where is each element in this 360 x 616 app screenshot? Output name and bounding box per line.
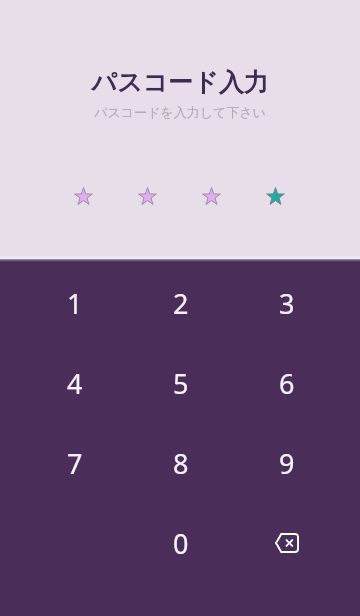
button[interactable]: Backspace [234, 503, 340, 583]
staticText: 4 [67, 365, 83, 402]
button[interactable]: 9 [234, 423, 340, 503]
staticText: 3 [279, 285, 295, 322]
button[interactable]: 1 [21, 263, 128, 343]
button[interactable]: 0 [128, 503, 234, 583]
staticText: 8 [173, 445, 189, 482]
staticText: 1 [67, 285, 83, 322]
button[interactable]: 3 [234, 263, 340, 343]
staticText: 5 [173, 365, 189, 402]
staticText: 0 [173, 525, 189, 562]
staticText: 7 [67, 445, 83, 482]
button[interactable]: 7 [21, 423, 128, 503]
button[interactable]: 5 [128, 343, 234, 423]
staticText: 9 [279, 445, 295, 482]
staticText: 6 [279, 365, 295, 402]
staticText: パスコード入力 [91, 67, 269, 98]
staticText: パスコードを入力して下さい [94, 104, 266, 120]
button[interactable]: 6 [234, 343, 340, 423]
staticText: 2 [173, 285, 189, 322]
button[interactable]: 2 [128, 263, 234, 343]
button[interactable]: 4 [21, 343, 128, 423]
button[interactable]: 8 [128, 423, 234, 503]
